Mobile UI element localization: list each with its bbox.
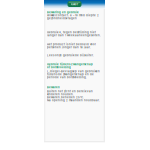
staticText: Bewaring en gebruik (47, 11, 79, 14)
staticText: of borstvoeding (47, 66, 71, 69)
staticText: gezondheidsvragen (47, 17, 77, 20)
staticText: Gebruik tijdens zwangerschap (47, 63, 93, 66)
staticText: AMGT (70, 3, 78, 6)
staticText: Buiten het zicht en bereik van (47, 90, 93, 93)
staticText: Wikkelcontact: 6 – 10 mnd diepte 2 (47, 14, 99, 17)
staticText: langer dan 1 week aaneengesloten. (47, 34, 101, 37)
staticText: Bewaren (47, 86, 60, 89)
staticText: tijdens de zwangerschap en de (47, 73, 94, 76)
staticText: Lees onze gebruik de bijsluiter. (47, 54, 94, 57)
staticText: Na opening 2 maanden houdbaar. (47, 99, 100, 102)
staticText: Het product is niet bedoeld voor (47, 43, 96, 46)
staticText: kinderen houden. (47, 93, 74, 96)
staticText: Bewaren beneden 25°C. (47, 96, 84, 99)
staticText: L.diegel-Bevlagsep van gebruiken (47, 70, 100, 73)
staticText: personen jonger dan 18 jaar. (47, 46, 91, 49)
staticText: periode van borstvoeding. (47, 76, 87, 79)
staticText: Gebruik 4, tegen bestrijding niet (47, 31, 96, 34)
